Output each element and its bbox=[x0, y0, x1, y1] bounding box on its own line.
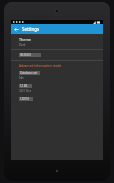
button[interactable]: Database: ext bbox=[11, 71, 103, 80]
staticText: 120151 bbox=[20, 97, 30, 101]
staticText: Idle bbox=[19, 76, 24, 80]
button[interactable]: Navigate up bbox=[11, 24, 21, 34]
button[interactable]: 12 KB bbox=[11, 84, 103, 93]
staticText: Database: ext bbox=[20, 71, 38, 75]
staticText: 00:00:00 bbox=[20, 53, 31, 57]
staticText: Theme bbox=[19, 37, 31, 42]
button[interactable]: 00:00:00 bbox=[11, 50, 103, 60]
staticText: 3251 files bbox=[19, 89, 31, 93]
staticText: Settings bbox=[22, 26, 40, 32]
staticText: Advanced information mode bbox=[19, 64, 62, 68]
button[interactable]: 120151 bbox=[11, 97, 103, 101]
button[interactable]: Theme bbox=[11, 37, 103, 49]
staticText: Dark bbox=[19, 43, 26, 47]
staticText: 12 KB bbox=[20, 84, 28, 88]
